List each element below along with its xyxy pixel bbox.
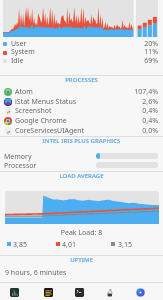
staticText: 3,85 <box>13 240 27 250</box>
staticText: Screenshot <box>15 106 52 116</box>
button[interactable]: Screenshot <box>0 105 163 115</box>
staticText: CoreServicesUIAgent <box>15 126 85 136</box>
staticText: 9 hours, 6 minutes <box>5 268 67 278</box>
staticText: 11% <box>0 47 158 57</box>
button[interactable]: Google Chrome <box>0 115 163 125</box>
staticText: 4,01 <box>62 240 76 250</box>
staticText: INTEL IRIS PLUS GRAPHICS <box>0 137 163 145</box>
staticText: 0,4% <box>0 116 158 126</box>
staticText: 107,4% <box>0 87 158 97</box>
staticText: 2,6% <box>0 97 158 107</box>
staticText: User <box>11 39 27 49</box>
staticText: Processor <box>4 161 37 171</box>
button[interactable]: iStat Menus Status <box>0 96 163 106</box>
staticText: Memory <box>4 152 32 162</box>
staticText: UPTIME <box>0 256 163 264</box>
staticText: Atom <box>15 87 33 97</box>
staticText: Peak Load: 8 <box>0 228 163 238</box>
staticText: PROCESSES <box>0 76 163 84</box>
staticText: 69% <box>0 56 158 66</box>
button[interactable]: Safari <box>136 288 145 297</box>
button[interactable]: Atom <box>0 86 163 96</box>
staticText: Google Chrome <box>15 116 67 126</box>
staticText: System <box>11 47 35 57</box>
staticText: Idle <box>11 56 24 66</box>
button[interactable]: Screenshot <box>105 288 114 297</box>
staticText: 0,4% <box>0 106 158 116</box>
button[interactable]: Activity Monitor <box>10 288 19 297</box>
staticText: iStat Menus Status <box>15 97 77 107</box>
button[interactable]: Console <box>44 288 53 297</box>
staticText: 3,15 <box>118 240 132 250</box>
button[interactable]: CoreServicesUIAgent <box>0 125 163 135</box>
button[interactable]: Terminal <box>75 288 84 297</box>
staticText: LOAD AVERAGE <box>0 172 163 180</box>
staticText: 20% <box>0 39 158 49</box>
staticText: 0,0% <box>0 126 158 136</box>
